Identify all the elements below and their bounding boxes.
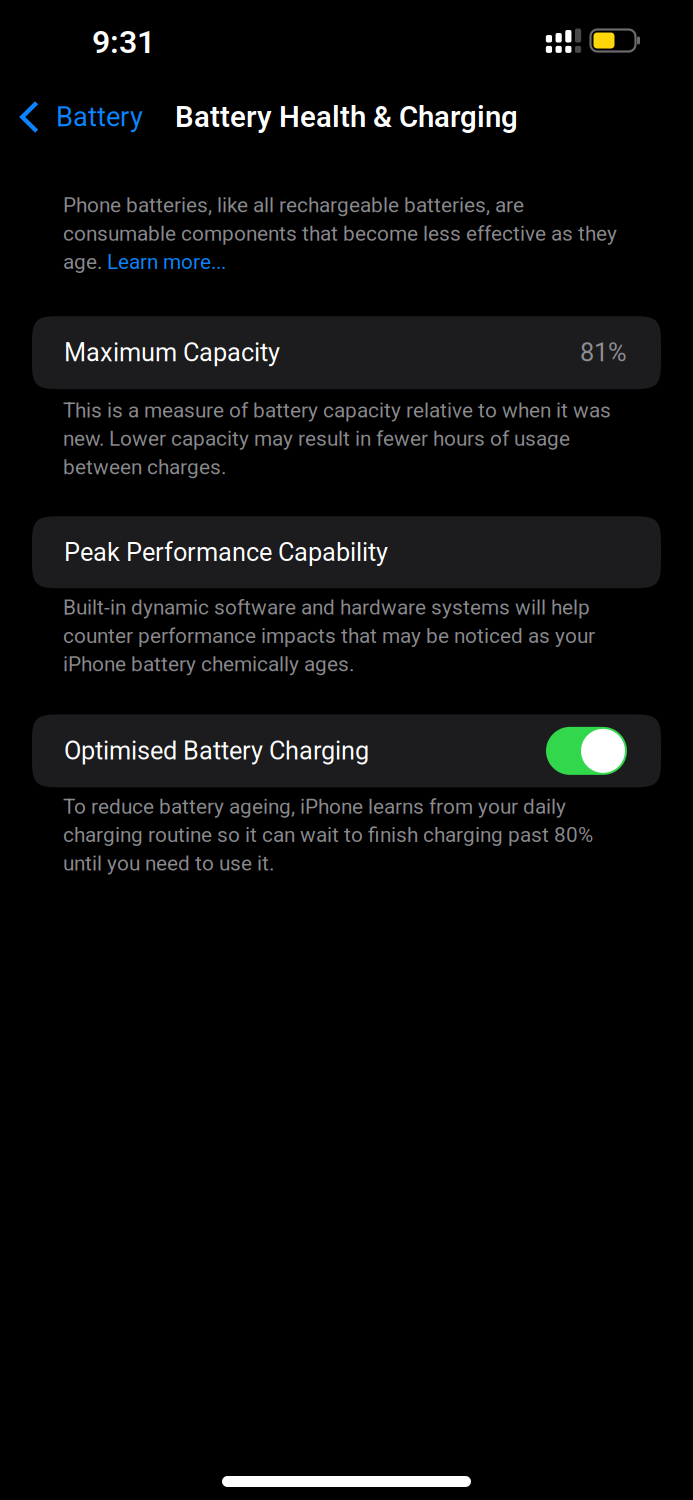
button[interactable]: Battery bbox=[0, 94, 175, 140]
staticText: Built-in dynamic software and hardware s… bbox=[63, 595, 595, 676]
staticText: Phone batteries, like all rechargeable b… bbox=[63, 193, 617, 274]
button[interactable]: Optimised Battery Charging bbox=[0, 714, 661, 787]
staticText: Peak Performance Capability bbox=[64, 537, 388, 567]
button[interactable]: Peak Performance Capability bbox=[0, 516, 661, 588]
staticText: Maximum Capacity bbox=[64, 338, 280, 367]
staticText: 81% bbox=[580, 338, 627, 367]
staticText: This is a measure of battery capacity re… bbox=[63, 398, 611, 479]
staticText: To reduce battery ageing, iPhone learns … bbox=[63, 794, 593, 875]
staticText: Battery Health & Charging bbox=[175, 100, 518, 134]
staticText: 9:31 bbox=[92, 23, 155, 61]
button[interactable]: Maximum Capacity bbox=[0, 316, 661, 389]
staticText: Battery bbox=[56, 101, 143, 133]
staticText: Optimised Battery Charging bbox=[64, 736, 369, 766]
